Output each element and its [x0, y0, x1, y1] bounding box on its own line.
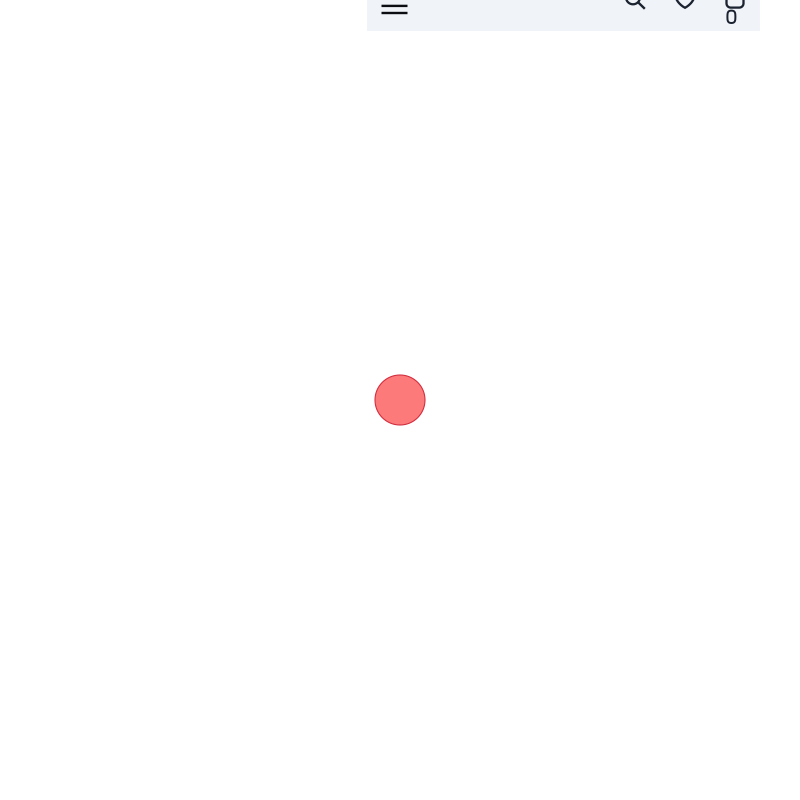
button[interactable]: Menu: [376, 0, 414, 31]
button[interactable]: Search: [620, 0, 652, 31]
button[interactable]: Wishlist: [670, 0, 702, 31]
button[interactable]: Cart, 0 items: [720, 0, 752, 31]
